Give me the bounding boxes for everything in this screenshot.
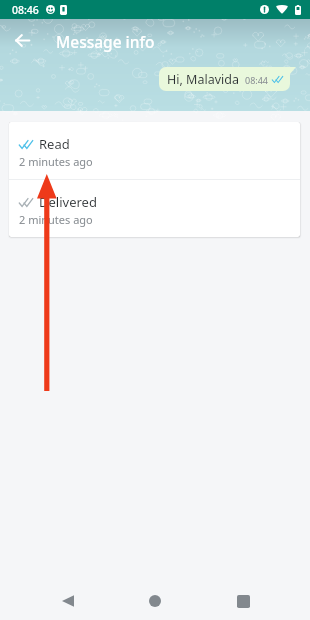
button[interactable]: Back <box>48 581 88 620</box>
staticText: 08:46 <box>12 3 39 17</box>
button[interactable]: Home <box>135 581 175 620</box>
button[interactable]: Recent apps <box>223 581 263 620</box>
staticText: 2 minutes ago <box>19 212 93 227</box>
button[interactable]: Read <box>9 122 300 179</box>
staticText: 08:44 <box>245 74 269 86</box>
staticText: Message info <box>56 31 155 52</box>
staticText: Hi, Malavida <box>167 71 239 88</box>
staticText: Delivered <box>39 193 97 211</box>
staticText: Read <box>39 135 70 153</box>
button[interactable]: Delivered <box>9 180 300 237</box>
button[interactable]: Back <box>9 27 35 53</box>
staticText: 2 minutes ago <box>19 154 93 169</box>
